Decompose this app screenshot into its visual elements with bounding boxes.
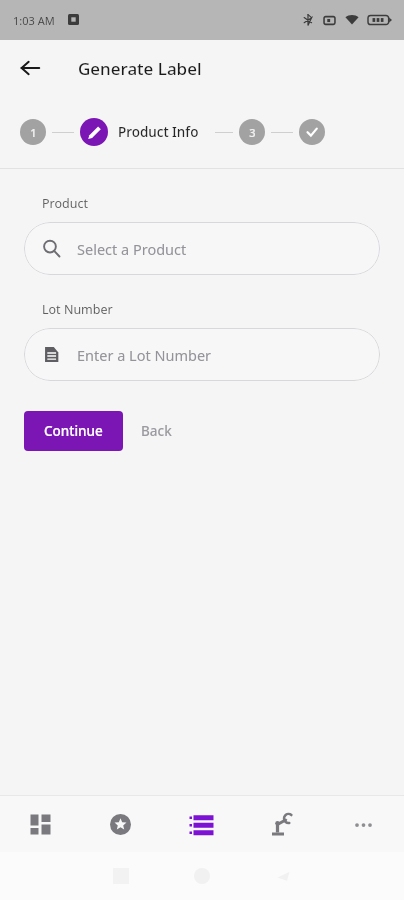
staticText: Back [141, 422, 172, 440]
button[interactable]: Product Info step [80, 118, 108, 146]
button[interactable]: Labels [161, 796, 242, 852]
button[interactable]: Continue [24, 411, 123, 451]
button[interactable]: More [323, 796, 404, 852]
button[interactable]: Back [10, 48, 50, 88]
button[interactable]: Favorites [80, 796, 161, 852]
button[interactable]: Select a Product [24, 222, 380, 275]
button[interactable]: Enter a Lot Number [24, 328, 380, 381]
button[interactable]: Machines [242, 796, 323, 852]
staticText: Product Info [118, 123, 199, 141]
staticText: Select a Product [77, 239, 187, 259]
staticText: 1:03 AM [13, 13, 55, 28]
button[interactable]: Dashboard [0, 796, 80, 852]
button[interactable]: Final step [299, 119, 325, 145]
staticText: Lot Number [42, 301, 113, 318]
staticText: Continue [44, 422, 103, 440]
button[interactable]: Back [123, 411, 190, 451]
staticText: 1 [30, 125, 37, 140]
staticText: Product [42, 195, 88, 212]
button[interactable]: 1 [20, 119, 46, 145]
button[interactable]: 3 [239, 119, 265, 145]
staticText: 3 [249, 125, 256, 140]
staticText: Generate Label [78, 57, 202, 80]
staticText: Enter a Lot Number [77, 345, 212, 365]
